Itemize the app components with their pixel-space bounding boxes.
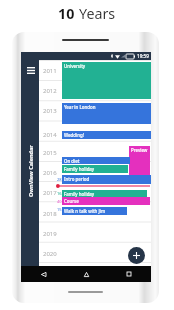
staticText: Preview [131,147,148,153]
staticText: Course [64,198,79,204]
staticText: 2014 [43,131,57,139]
staticText: On diet [64,158,80,164]
staticText: 2017 [43,189,57,197]
button[interactable]: Recent apps [121,267,137,281]
button[interactable]: Family holiday [62,165,128,173]
button[interactable]: Walk n talk with Jim [62,207,127,215]
button[interactable]: Year in London [62,103,151,124]
staticText: 2016 [43,169,57,177]
staticText: 2012 [43,87,57,95]
staticText: Walk n talk with Jim [64,208,106,214]
staticText: 40 [57,199,62,204]
staticText: 2019 [43,230,57,238]
staticText: Wedding! [64,132,84,138]
button[interactable]: University [62,62,151,99]
staticText: 16 [57,191,62,196]
staticText: 2015 [43,149,57,157]
staticText: 15 [57,207,62,212]
button[interactable]: Wedding! [62,131,151,139]
button[interactable]: Intro period [62,175,151,184]
staticText: Family holiday [64,166,95,172]
staticText: 2020 [43,250,57,258]
staticText: Family holiday [64,191,95,197]
staticText: 2013 [43,107,57,115]
staticText: 10 [58,4,79,23]
staticText: Years [79,4,116,23]
staticText: 2018 [43,210,57,218]
button[interactable]: Back [35,267,51,281]
button[interactable]: Preview [129,146,150,175]
staticText: Year in London [64,104,96,110]
button[interactable]: Family holiday [62,190,147,197]
staticText: Intro period [64,176,90,182]
staticText: 2011 [43,67,57,75]
staticText: University [64,63,86,69]
button[interactable]: On diet [62,157,130,164]
button[interactable]: Menu [27,67,35,74]
staticText: 19:59 [137,53,149,59]
button[interactable]: Course [62,197,150,205]
button[interactable]: Home [78,267,94,281]
staticText: 28 [57,177,62,182]
button[interactable]: Add event [128,247,145,264]
